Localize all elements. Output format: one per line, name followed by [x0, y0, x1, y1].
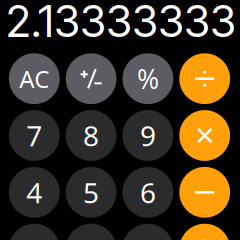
button[interactable]: 7 — [9, 110, 60, 161]
staticText: AC — [19, 63, 49, 95]
button[interactable]: 6 — [122, 167, 173, 218]
button[interactable]: % — [122, 53, 173, 104]
button[interactable]: Divide — [179, 53, 230, 104]
staticText: 8 — [83, 117, 99, 154]
staticText: 9 — [140, 117, 156, 154]
staticText: 4 — [26, 174, 42, 211]
staticText: % — [137, 61, 159, 96]
staticText: 7 — [26, 117, 42, 154]
staticText: 6 — [140, 174, 156, 211]
button[interactable]: Multiply — [179, 110, 230, 161]
button[interactable]: 8 — [66, 110, 116, 161]
button[interactable]: 3 — [122, 224, 173, 240]
staticText: 2.13333333 — [6, 0, 236, 48]
button[interactable]: 2 — [66, 224, 116, 240]
button[interactable]: Subtract — [179, 167, 230, 218]
button[interactable]: AC — [9, 53, 60, 104]
button[interactable]: 4 — [9, 167, 60, 218]
button[interactable]: Plus minus — [66, 53, 116, 104]
staticText: 5 — [83, 174, 99, 211]
button[interactable]: 5 — [66, 167, 116, 218]
button[interactable]: 1 — [9, 224, 60, 240]
button[interactable]: 9 — [122, 110, 173, 161]
button[interactable]: Add — [179, 224, 230, 240]
